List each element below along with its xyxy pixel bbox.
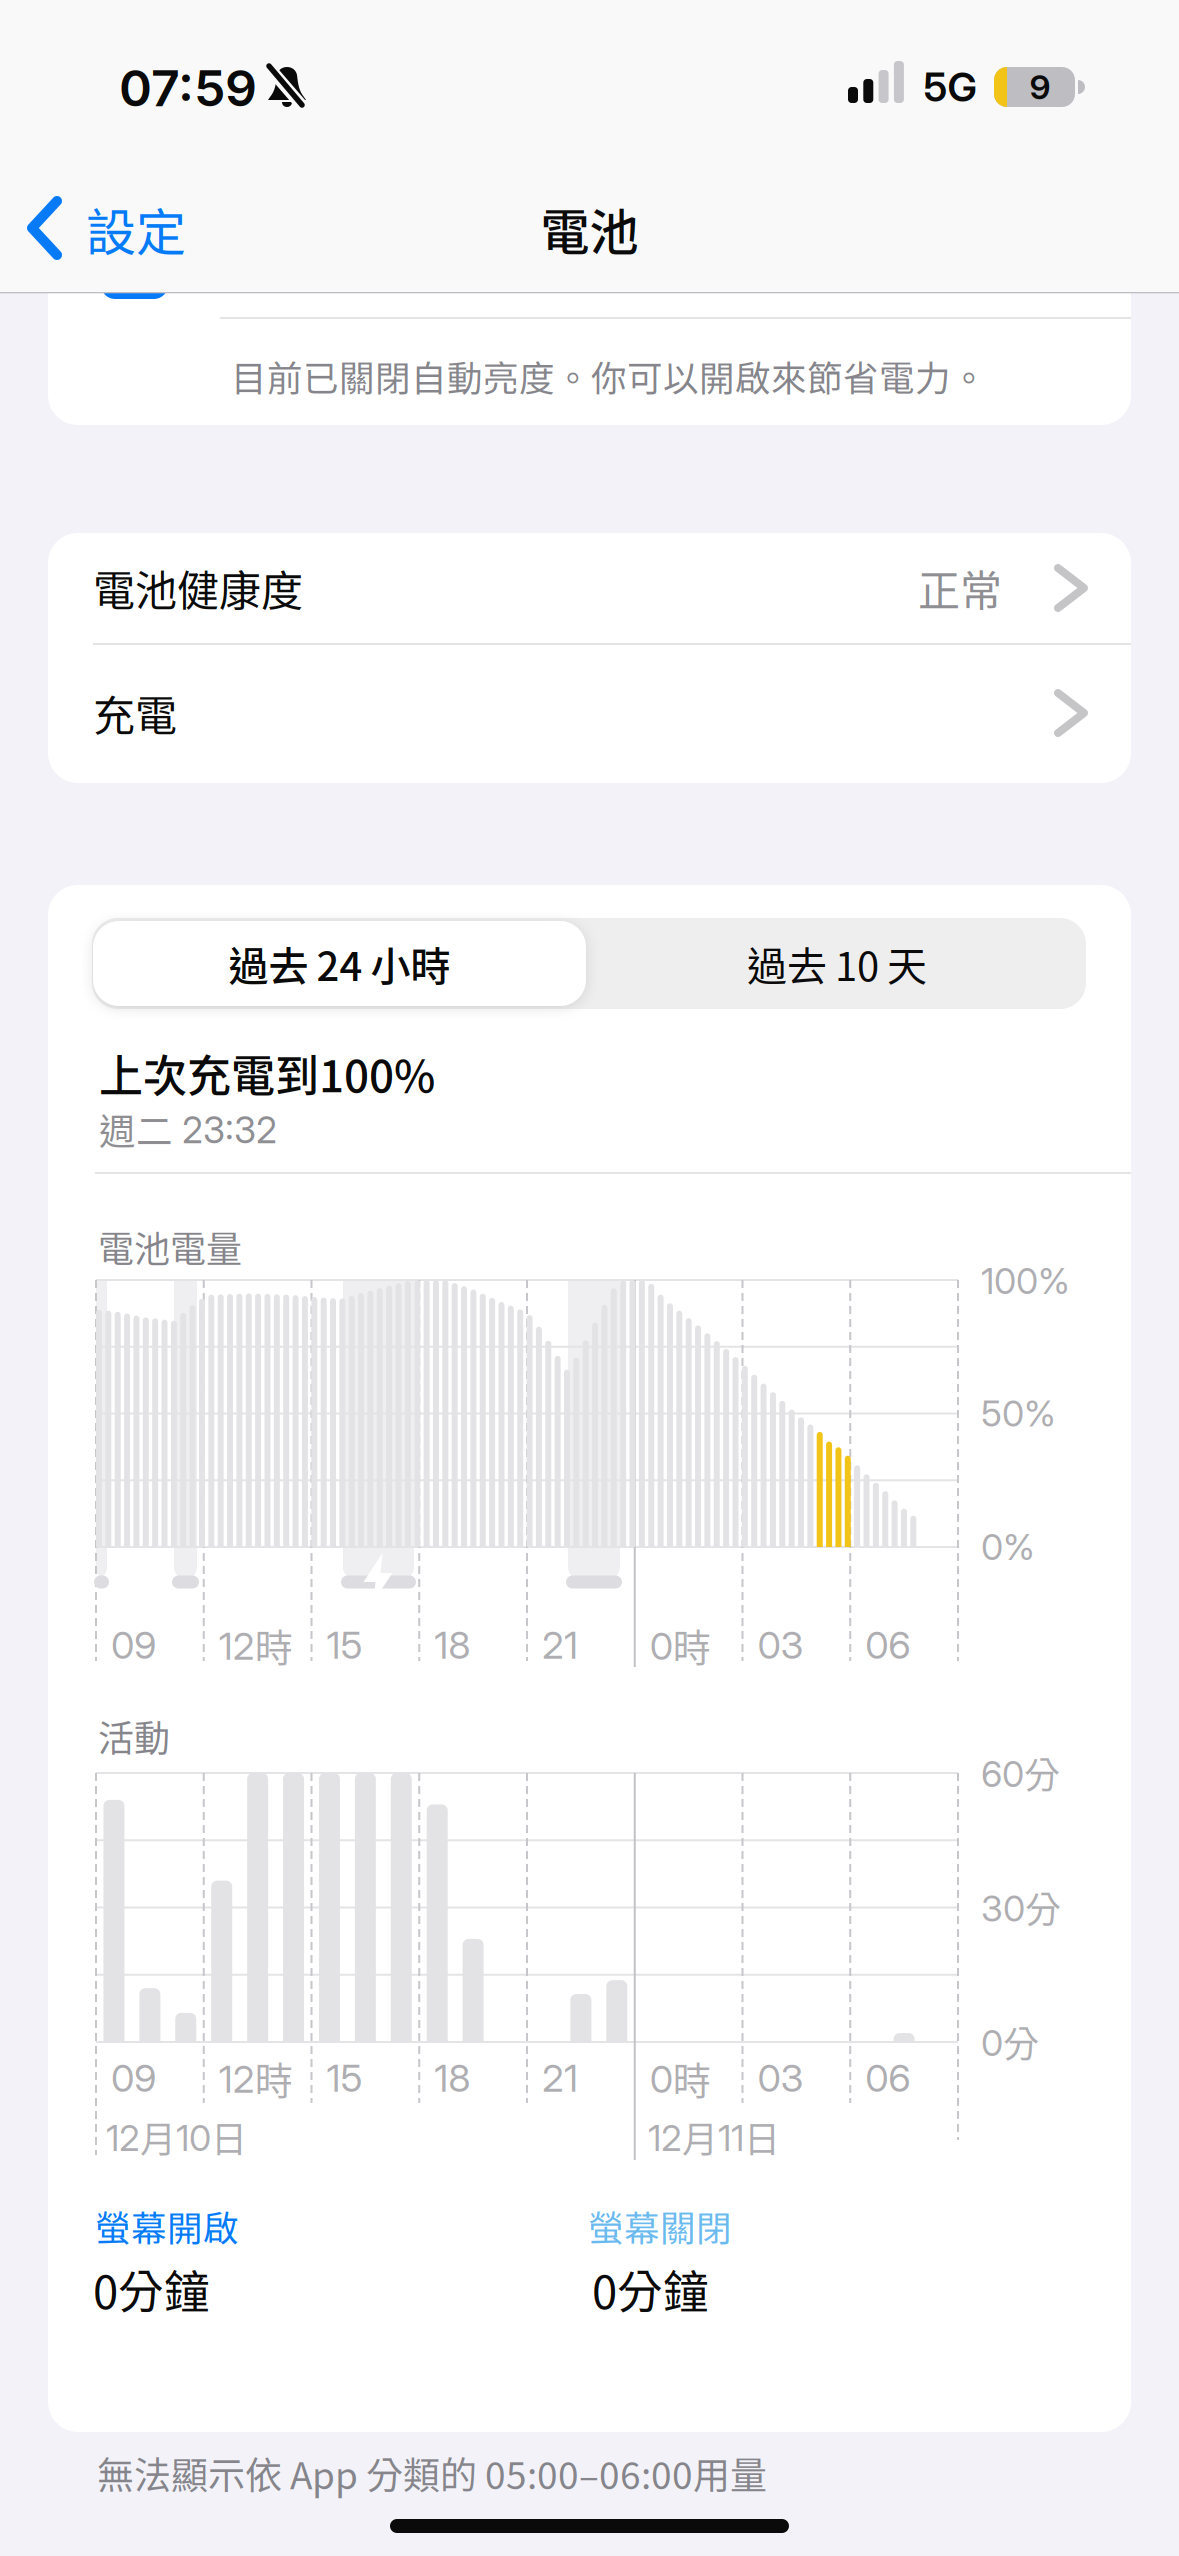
button[interactable]: 過去 24 小時 [93,921,586,1006]
staticText: 正常 [918,558,1002,618]
staticText: 目前已關閉自動亮度。你可以開啟來節省電力。 [231,350,987,402]
staticText: 18 [434,2055,470,2101]
staticText: 0分 [981,2016,1039,2068]
staticText: 過去 24 小時 [228,934,450,992]
staticText: 12時 [219,2050,293,2105]
staticText: 過去 10 天 [747,934,927,992]
staticText: 電池健康度 [93,558,303,618]
staticText: 15 [326,1622,362,1668]
staticText: 03 [757,1622,803,1668]
staticText: 螢幕開啟 [95,2200,239,2252]
staticText: 0分鐘 [93,2256,210,2322]
staticText: 18 [434,1622,470,1668]
staticText: 21 [542,2055,578,2101]
staticText: 電池電量 [98,1221,242,1273]
staticText: 21 [542,1622,578,1668]
staticText: 設定 [86,193,186,265]
button[interactable]: 充電 [48,658,1131,768]
staticText: 06 [865,1622,910,1668]
staticText: 5G [923,63,976,111]
staticText: 0時 [650,1617,711,1672]
button[interactable]: 返回設定 [28,184,278,274]
staticText: 09 [111,2055,156,2101]
staticText: 0分鐘 [592,2256,709,2322]
staticText: 09 [111,1622,156,1668]
staticText: 充電 [93,683,177,743]
button[interactable]: 電池健康度 [48,533,1131,643]
staticText: 活動 [98,1710,170,1762]
staticText: 100% [981,1259,1070,1303]
staticText: 上次充電到100% [99,1041,435,1105]
staticText: 12月11日 [648,2111,780,2163]
staticText: 03 [757,2055,803,2101]
button[interactable]: 過去 10 天 [592,918,1082,1009]
staticText: 07:59 [119,58,257,118]
staticText: 螢幕關閉 [588,2200,732,2252]
staticText: 12時 [219,1617,293,1672]
staticText: 50% [981,1392,1056,1435]
staticText: 0% [981,1525,1035,1569]
staticText: 15 [326,2055,362,2101]
staticText: 0時 [650,2050,711,2105]
staticText: 60分 [981,1747,1060,1799]
staticText: 06 [865,2055,910,2101]
staticText: 12月10日 [106,2111,247,2163]
staticText: 無法顯示依 App 分類的 05:00–06:00用量 [97,2446,767,2500]
staticText: 9 [1029,66,1050,107]
staticText: 週二 23:32 [99,1103,277,1155]
staticText: 30分 [981,1881,1061,1933]
staticText: 電池 [540,193,638,264]
